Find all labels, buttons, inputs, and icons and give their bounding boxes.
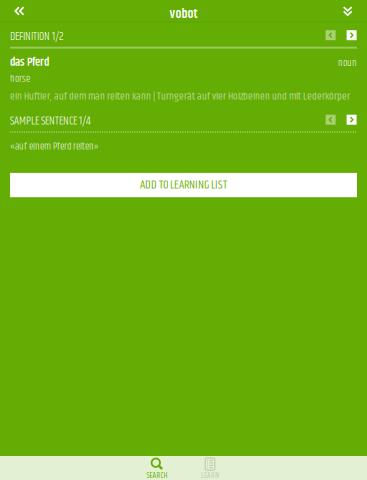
staticText: horse	[10, 71, 30, 87]
button[interactable]: Collapse	[333, 0, 363, 21]
staticText: das Pferd	[10, 53, 49, 71]
staticText: ein Huftier, auf dem man reiten kann | T…	[10, 88, 350, 104]
button[interactable]: ADD TO LEARNING LIST	[10, 173, 357, 197]
button[interactable]: Previous	[326, 115, 336, 125]
button[interactable]: Next	[347, 115, 357, 125]
staticText: noun	[338, 55, 357, 71]
staticText: LEARN	[201, 470, 219, 480]
staticText: DEFINITION 1/2	[10, 28, 64, 45]
staticText: ADD TO LEARNING LIST	[140, 176, 227, 194]
button[interactable]: SEARCH	[130, 456, 183, 480]
staticText: «auf einem Pferd reiten»	[10, 139, 99, 154]
button[interactable]: Next	[347, 30, 357, 40]
button[interactable]: LEARN	[183, 456, 236, 480]
button[interactable]: Back	[4, 0, 34, 21]
staticText: vobot	[169, 4, 197, 24]
button[interactable]: Previous	[326, 30, 336, 40]
staticText: SEARCH	[146, 470, 167, 480]
staticText: SAMPLE SENTENCE 1/4	[10, 113, 91, 130]
